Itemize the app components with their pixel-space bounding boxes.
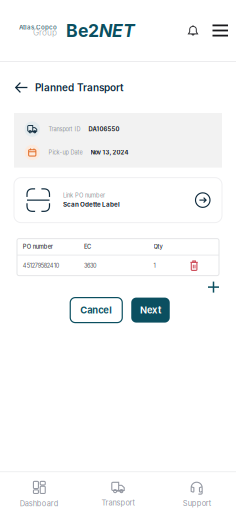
staticText: Dashboard bbox=[20, 499, 59, 508]
staticText: Atlas Copco bbox=[19, 24, 57, 31]
button[interactable]: Menu bbox=[203, 18, 236, 42]
button[interactable]: Back bbox=[0, 74, 35, 100]
staticText: Cancel bbox=[80, 304, 112, 316]
staticText: DA106550 bbox=[88, 126, 119, 133]
staticText: Nov 13, 2024 bbox=[90, 149, 128, 156]
staticText: Scan Odette Label bbox=[63, 201, 120, 208]
staticText: 1 bbox=[154, 262, 156, 269]
button[interactable]: Notifications bbox=[182, 18, 203, 42]
staticText: Link PO number bbox=[63, 192, 105, 199]
staticText: Pick-up Date bbox=[48, 149, 82, 156]
button[interactable]: Support bbox=[157, 481, 236, 508]
staticText: 451279582410 bbox=[23, 262, 60, 269]
staticText: Qty bbox=[154, 243, 163, 250]
staticText: Transport bbox=[101, 498, 134, 507]
staticText: PO number bbox=[23, 243, 53, 250]
button[interactable]: Delete row bbox=[190, 258, 219, 273]
button[interactable]: Cancel bbox=[70, 298, 122, 323]
button[interactable]: Add PO line bbox=[202, 277, 225, 298]
staticText: EC bbox=[84, 243, 91, 250]
button[interactable]: Transport bbox=[79, 482, 157, 507]
staticText: Be2 bbox=[66, 20, 99, 41]
staticText: Next bbox=[140, 304, 161, 316]
staticText: Support bbox=[183, 499, 211, 508]
staticText: Group bbox=[33, 27, 57, 37]
staticText: Transport ID bbox=[48, 126, 80, 133]
staticText: 3630 bbox=[84, 262, 97, 269]
button[interactable]: Next bbox=[131, 298, 170, 323]
button[interactable]: Dashboard bbox=[0, 481, 79, 508]
staticText: NET bbox=[99, 20, 135, 41]
button[interactable]: Link PO number bbox=[0, 168, 236, 223]
staticText: Planned Transport bbox=[35, 81, 124, 94]
